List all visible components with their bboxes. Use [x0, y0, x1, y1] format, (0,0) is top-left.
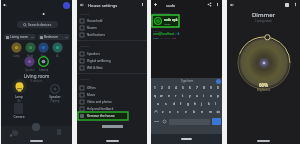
button[interactable]: Bedroom [38, 34, 70, 40]
staticText: Rooms [87, 26, 97, 30]
button[interactable]: 3 [165, 84, 172, 92]
button[interactable]: Video and photos [77, 98, 147, 105]
button[interactable]: Back [79, 2, 85, 8]
button[interactable]: Schedule [285, 3, 289, 7]
button[interactable]: Fan [38, 42, 49, 53]
button[interactable]: Shift [152, 108, 159, 116]
button[interactable]: n [198, 108, 206, 116]
button[interactable]: Account [63, 2, 70, 9]
button[interactable]: z [159, 108, 166, 116]
button[interactable]: p [214, 92, 221, 100]
button[interactable]: l [212, 100, 219, 108]
button[interactable]: Help and feedback [77, 105, 147, 112]
button[interactable]: Emoji [162, 119, 167, 124]
button[interactable]: Add [153, 2, 158, 7]
button[interactable]: Plant [25, 42, 36, 53]
button[interactable]: Lamp [11, 42, 22, 53]
button[interactable]: b [190, 108, 198, 116]
button[interactable]: r [172, 92, 179, 100]
button[interactable]: ?123 [152, 116, 160, 127]
button[interactable]: o [207, 92, 214, 100]
button[interactable]: Living room [4, 34, 36, 40]
button[interactable]: w [158, 92, 165, 100]
button[interactable]: y [186, 92, 193, 100]
button[interactable]: 8 [200, 84, 207, 92]
button[interactable]: More options [215, 2, 220, 7]
button[interactable]: e [165, 92, 172, 100]
button[interactable]: v [182, 108, 190, 116]
button[interactable]: 6 [186, 84, 193, 92]
staticText: 7 [196, 86, 198, 90]
button[interactable]: Offers [77, 84, 147, 91]
staticText: install [164, 36, 172, 39]
button[interactable]: Lamp [14, 82, 25, 94]
button[interactable]: 7 [193, 84, 200, 92]
button[interactable]: Music [77, 91, 147, 98]
staticText: p [217, 94, 219, 98]
button[interactable]: Camera selected [38, 56, 49, 67]
staticText: u [196, 94, 198, 98]
button[interactable]: x [166, 108, 174, 116]
button[interactable]: a [154, 100, 162, 108]
button[interactable]: f [177, 100, 184, 108]
button[interactable]: sudo apk [152, 15, 179, 27]
staticText: h [194, 102, 196, 106]
staticText: e [168, 94, 170, 98]
button[interactable]: g [184, 100, 191, 108]
button[interactable]: 9 [207, 84, 214, 92]
button[interactable]: i [200, 92, 207, 100]
button[interactable]: Speaker [49, 83, 61, 95]
button[interactable]: k [205, 100, 212, 108]
button[interactable]: More options [293, 2, 298, 7]
staticText: sudo apk [164, 18, 178, 22]
button[interactable]: Household [77, 17, 147, 24]
staticText: Brightness [227, 88, 300, 92]
button[interactable]: Speaker [24, 56, 35, 67]
button[interactable]: Notifications [77, 31, 147, 38]
staticText: 4 [175, 86, 177, 90]
button[interactable]: Wifi & Nest [77, 64, 147, 71]
button[interactable]: Speakers [77, 50, 147, 57]
button[interactable]: AC [52, 42, 63, 53]
button[interactable]: 2 [158, 84, 165, 92]
button[interactable]: j [198, 100, 205, 108]
button[interactable]: 0 [214, 84, 221, 92]
button[interactable]: 1 [152, 84, 158, 92]
button[interactable]: Rooms [77, 24, 147, 31]
button[interactable]: Home [32, 123, 40, 131]
button[interactable]: Digital wellbeing [77, 57, 147, 64]
button[interactable]: Back [229, 2, 235, 8]
staticText: Speaker [25, 68, 35, 72]
button[interactable]: Voice input [216, 79, 221, 84]
staticText: 8 [203, 86, 205, 90]
button[interactable]: c [174, 108, 182, 116]
staticText: Fan [41, 54, 46, 58]
staticText: General [80, 12, 90, 15]
button[interactable]: 4 [172, 84, 179, 92]
staticText: Recent [153, 29, 161, 32]
button[interactable]: Brightness dial [233, 32, 295, 94]
button[interactable]: Share [207, 2, 212, 7]
button[interactable]: Enter [212, 118, 221, 125]
button[interactable]: Remove the house [78, 112, 128, 120]
button[interactable]: d [170, 100, 177, 108]
button[interactable]: More options [140, 2, 145, 7]
button[interactable]: Favorites [12, 130, 18, 136]
staticText: Speakers [87, 52, 100, 56]
button[interactable]: q [152, 92, 158, 100]
staticText: Recommended [153, 11, 171, 14]
staticText: 0 [217, 86, 219, 90]
staticText: q [154, 94, 156, 98]
button[interactable]: s [162, 100, 170, 108]
button[interactable]: t [179, 92, 186, 100]
button[interactable]: h [191, 100, 198, 108]
staticText: Lamp [10, 95, 28, 99]
button[interactable]: m [206, 108, 214, 116]
button[interactable]: 5 [179, 84, 186, 92]
button[interactable]: Search devices [17, 21, 58, 28]
button[interactable]: u [193, 92, 200, 100]
button[interactable]: Backspace [214, 108, 221, 116]
